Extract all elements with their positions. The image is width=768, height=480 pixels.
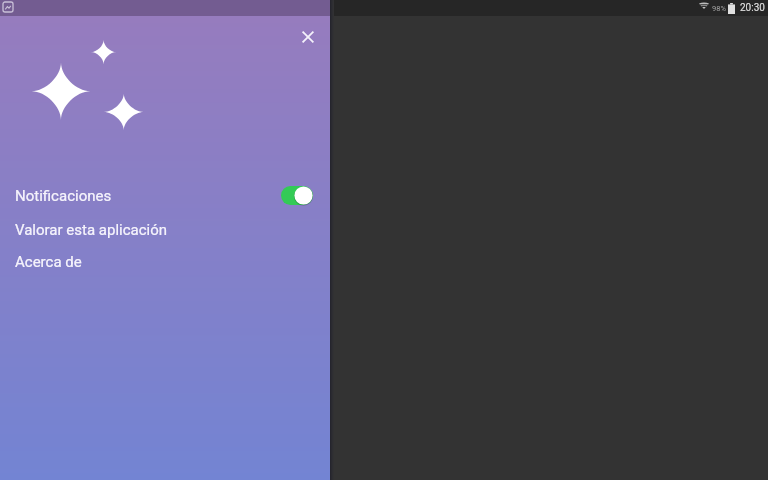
staticText: Acerca de <box>15 253 82 271</box>
staticText: Notificaciones <box>15 187 112 205</box>
staticText: 98% <box>712 4 726 13</box>
button[interactable]: Valorar esta aplicación <box>0 214 330 246</box>
staticText: 20:30 <box>740 2 765 14</box>
button[interactable]: Activar notificaciones <box>281 186 313 205</box>
staticText: Valorar esta aplicación <box>15 221 168 239</box>
button[interactable]: Notificaciones <box>0 180 330 212</box>
button[interactable]: Cerrar <box>288 17 328 57</box>
button[interactable]: Acerca de <box>0 246 330 278</box>
